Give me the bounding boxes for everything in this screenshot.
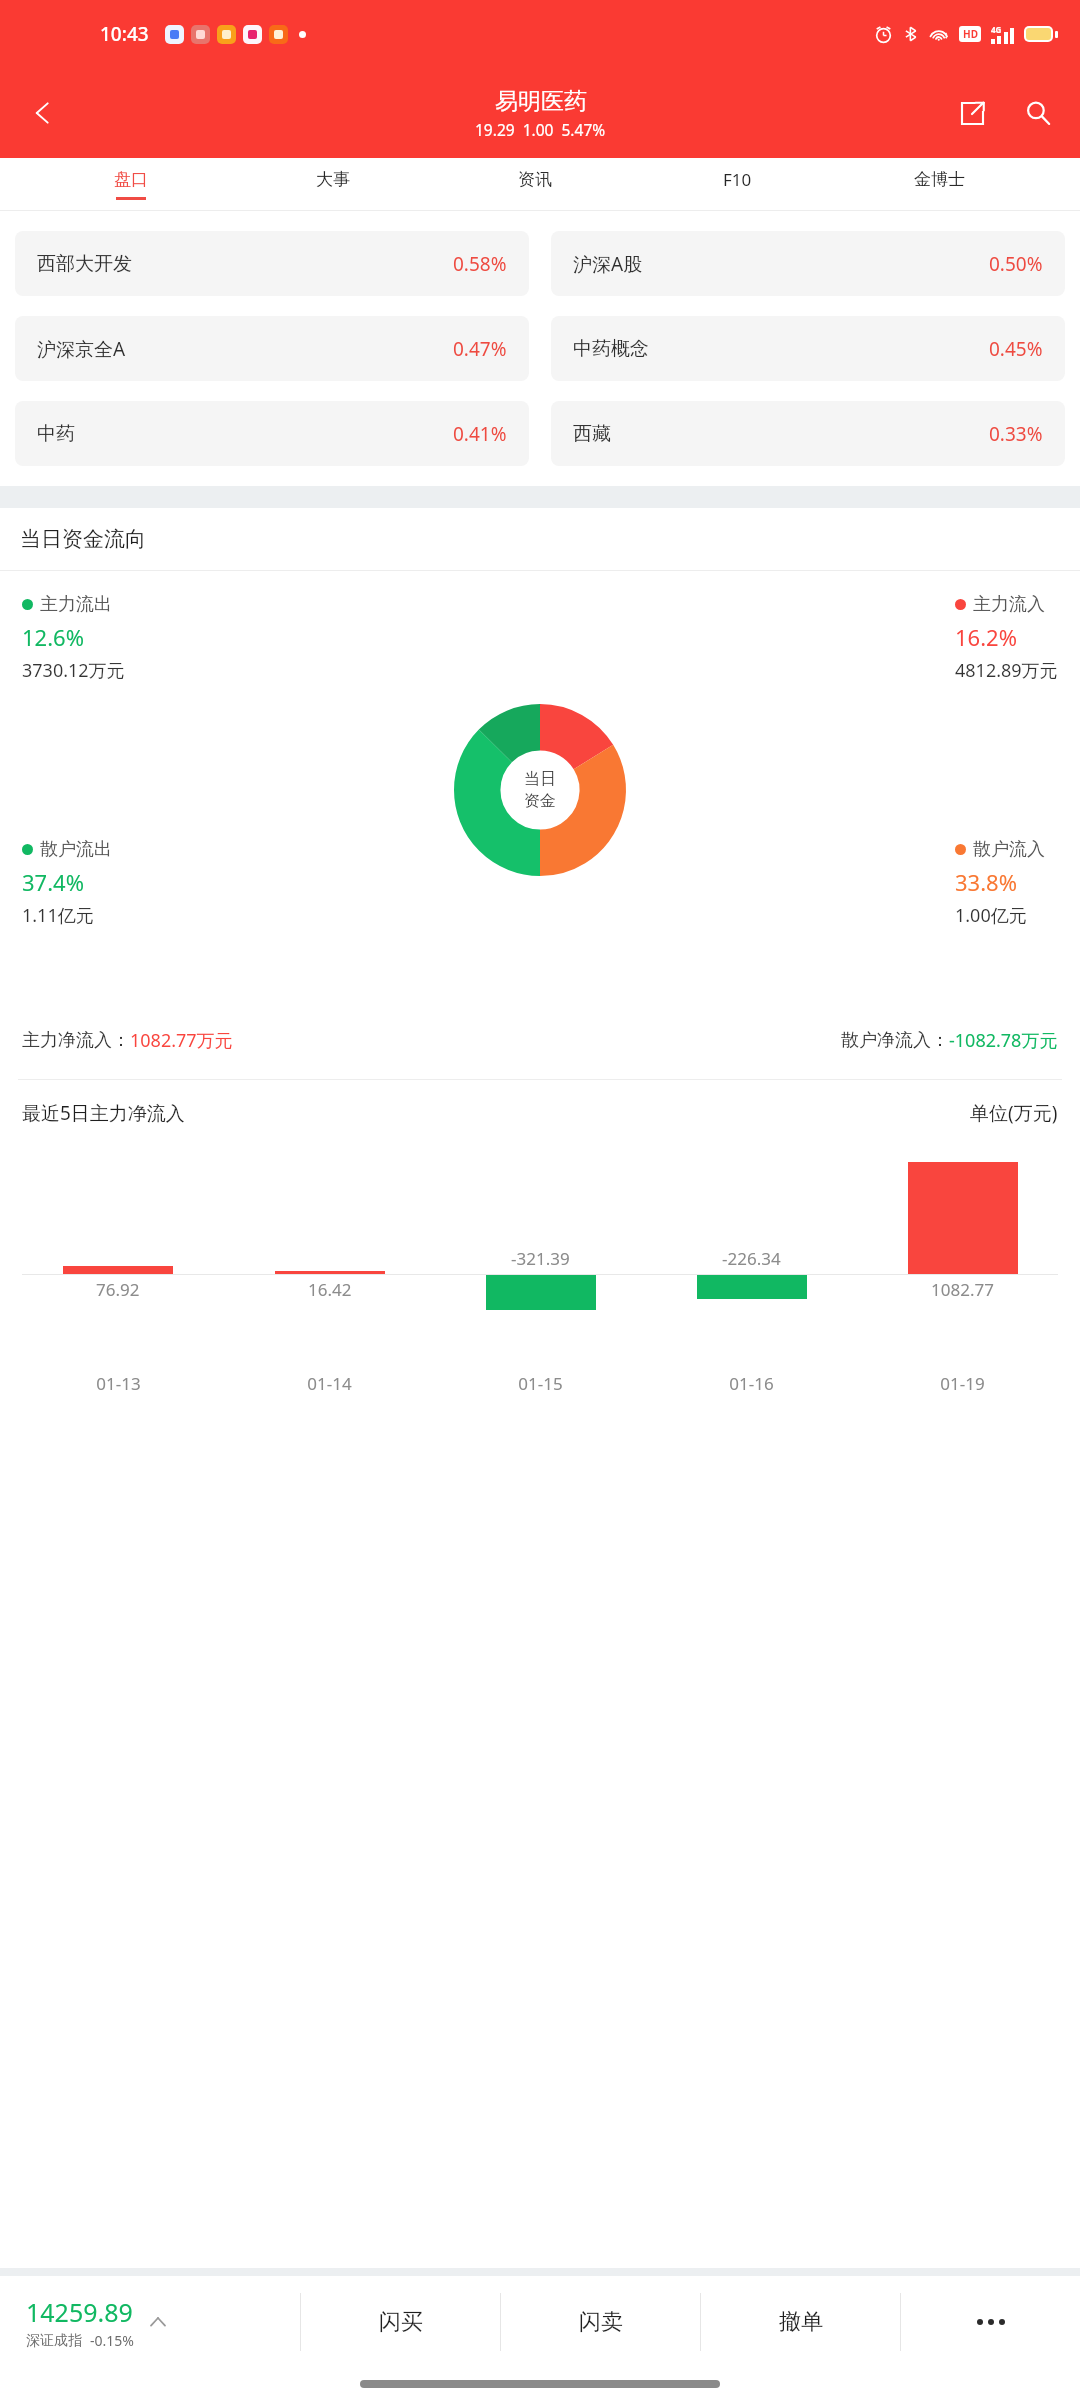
button[interactable]: More <box>901 2276 1080 2368</box>
staticText: 散户流入 <box>973 838 1045 861</box>
staticText: 撤单 <box>779 2308 823 2336</box>
staticText: HD <box>963 27 978 41</box>
button[interactable]: 金博士 <box>838 158 1040 210</box>
staticText: 易明医药 <box>495 87 587 116</box>
staticText: 12.6% <box>22 622 84 652</box>
staticText: 1.11亿元 <box>22 903 94 928</box>
staticText: 01-13 <box>96 1372 141 1395</box>
staticText: F10 <box>723 168 752 191</box>
button[interactable]: 沪深A股 <box>551 231 1065 296</box>
staticText: 33.8% <box>955 867 1017 897</box>
staticText: 0.47% <box>453 336 507 362</box>
staticText: 0.41% <box>453 421 507 447</box>
button[interactable]: 西藏 <box>551 401 1065 466</box>
staticText: 01-14 <box>307 1372 352 1395</box>
button[interactable]: 资讯 <box>434 158 636 210</box>
staticText: 37.4% <box>22 867 84 897</box>
staticText: 主力流出 <box>40 593 112 616</box>
staticText: 0.58% <box>453 251 507 277</box>
staticText: 0.45% <box>989 336 1043 362</box>
staticText: 76.92 <box>96 1278 140 1301</box>
button[interactable]: 14259.89 <box>0 2276 300 2368</box>
button[interactable]: 闪买 <box>301 2276 500 2368</box>
button[interactable]: Back <box>14 84 72 142</box>
staticText: 最近5日主力净流入 <box>22 1100 185 1126</box>
staticText: 01-16 <box>729 1372 774 1395</box>
button[interactable]: 撤单 <box>701 2276 900 2368</box>
staticText: 01-19 <box>940 1372 985 1395</box>
staticText: 沪深京全A <box>37 336 126 362</box>
staticText: 散户净流入： <box>841 1029 949 1052</box>
button[interactable]: 中药概念 <box>551 316 1065 381</box>
staticText: 西部大开发 <box>37 252 132 276</box>
button[interactable]: Search <box>1010 85 1066 141</box>
staticText: 金博士 <box>914 169 965 190</box>
staticText: 散户流出 <box>40 838 112 861</box>
staticText: 4812.89万元 <box>955 658 1058 683</box>
staticText: 14259.89 <box>26 2295 133 2329</box>
staticText: 16.42 <box>308 1278 352 1301</box>
staticText: 1.00亿元 <box>955 903 1027 928</box>
staticText: 单位(万元) <box>970 1100 1058 1126</box>
staticText: -226.34 <box>722 1247 781 1270</box>
staticText: 西藏 <box>573 422 611 446</box>
button[interactable]: 中药 <box>15 401 529 466</box>
staticText: 主力流入 <box>973 593 1045 616</box>
button[interactable]: 西部大开发 <box>15 231 529 296</box>
button[interactable]: 闪卖 <box>501 2276 700 2368</box>
staticText: 主力净流入： <box>22 1029 130 1052</box>
staticText: 资金 <box>524 791 556 811</box>
staticText: 闪买 <box>379 2308 423 2336</box>
staticText: 闪卖 <box>579 2308 623 2336</box>
button[interactable]: Share <box>944 85 1000 141</box>
staticText: 1082.77 <box>931 1278 994 1301</box>
staticText: 盘口 <box>114 169 148 190</box>
staticText: 01-15 <box>518 1372 563 1395</box>
staticText: 0.50% <box>989 251 1043 277</box>
staticText: 当日 <box>524 769 556 789</box>
staticText: 大事 <box>316 169 350 190</box>
staticText: 4G <box>991 24 1002 35</box>
staticText: 10:43 <box>100 21 149 47</box>
staticText: -0.15% <box>90 2331 134 2350</box>
button[interactable]: 大事 <box>232 158 434 210</box>
staticText: 0.33% <box>989 421 1043 447</box>
staticText: -1082.78万元 <box>949 1028 1058 1053</box>
staticText: -321.39 <box>511 1247 570 1270</box>
button[interactable]: 沪深京全A <box>15 316 529 381</box>
staticText: 3730.12万元 <box>22 658 125 683</box>
staticText: 资讯 <box>518 169 552 190</box>
staticText: 1082.77万元 <box>130 1028 233 1053</box>
staticText: 16.2% <box>955 622 1017 652</box>
staticText: 19.29 1.00 5.47% <box>475 119 606 140</box>
staticText: 沪深A股 <box>573 251 643 277</box>
staticText: 深证成指 <box>26 2332 82 2350</box>
staticText: 当日资金流向 <box>20 526 146 552</box>
button[interactable]: F10 <box>636 158 838 210</box>
staticText: 中药 <box>37 422 75 446</box>
staticText: 中药概念 <box>573 337 649 361</box>
button[interactable]: 盘口 <box>30 158 232 210</box>
